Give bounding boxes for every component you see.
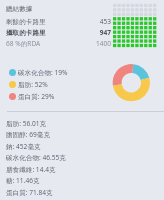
staticText: 68 %的RDA xyxy=(6,39,41,48)
staticText: 糖: 11.46克 xyxy=(6,176,40,185)
button[interactable]: 糖: 11.46克 xyxy=(6,176,164,185)
button[interactable]: 剩餘的卡路里 xyxy=(6,17,111,26)
staticText: 947 xyxy=(49,28,111,37)
staticText: 膽固醇: 69毫克 xyxy=(6,130,50,139)
staticText: 剩餘的卡路里 xyxy=(6,18,46,26)
staticText: 總結數據 xyxy=(6,5,33,13)
staticText: 膳食纖維: 14.4克 xyxy=(6,165,56,174)
button[interactable]: 脂肪: 52% xyxy=(9,80,48,89)
button[interactable]: 碳水化合物: 19% xyxy=(9,68,68,77)
staticText: 453 xyxy=(49,17,111,26)
staticText: 脂肪: 56.01克 xyxy=(6,119,47,128)
button[interactable]: 蛋白質: 71.84克 xyxy=(6,188,164,197)
button[interactable]: 68 %的RDA xyxy=(6,39,111,48)
button[interactable]: 碳水化合物: 46.55克 xyxy=(6,153,164,162)
staticText: 脂肪: 52% xyxy=(18,80,48,89)
button[interactable]: 脂肪: 56.01克 xyxy=(6,119,164,128)
button[interactable]: 攝取的卡路里 xyxy=(6,28,111,37)
button[interactable]: 膳食纖維: 14.4克 xyxy=(6,165,164,174)
staticText: 蛋白質: 29% xyxy=(18,92,55,101)
staticText: 蛋白質: 71.84克 xyxy=(6,188,53,197)
staticText: 鈉: 452毫克 xyxy=(6,142,41,151)
button[interactable]: 膽固醇: 69毫克 xyxy=(6,130,164,139)
staticText: 碳水化合物: 19% xyxy=(18,68,68,77)
button[interactable]: 鈉: 452毫克 xyxy=(6,142,164,151)
button[interactable]: 蛋白質: 29% xyxy=(9,92,55,101)
staticText: 1400 xyxy=(44,39,111,48)
staticText: 碳水化合物: 46.55克 xyxy=(6,153,66,162)
staticText: 攝取的卡路里 xyxy=(6,29,46,37)
